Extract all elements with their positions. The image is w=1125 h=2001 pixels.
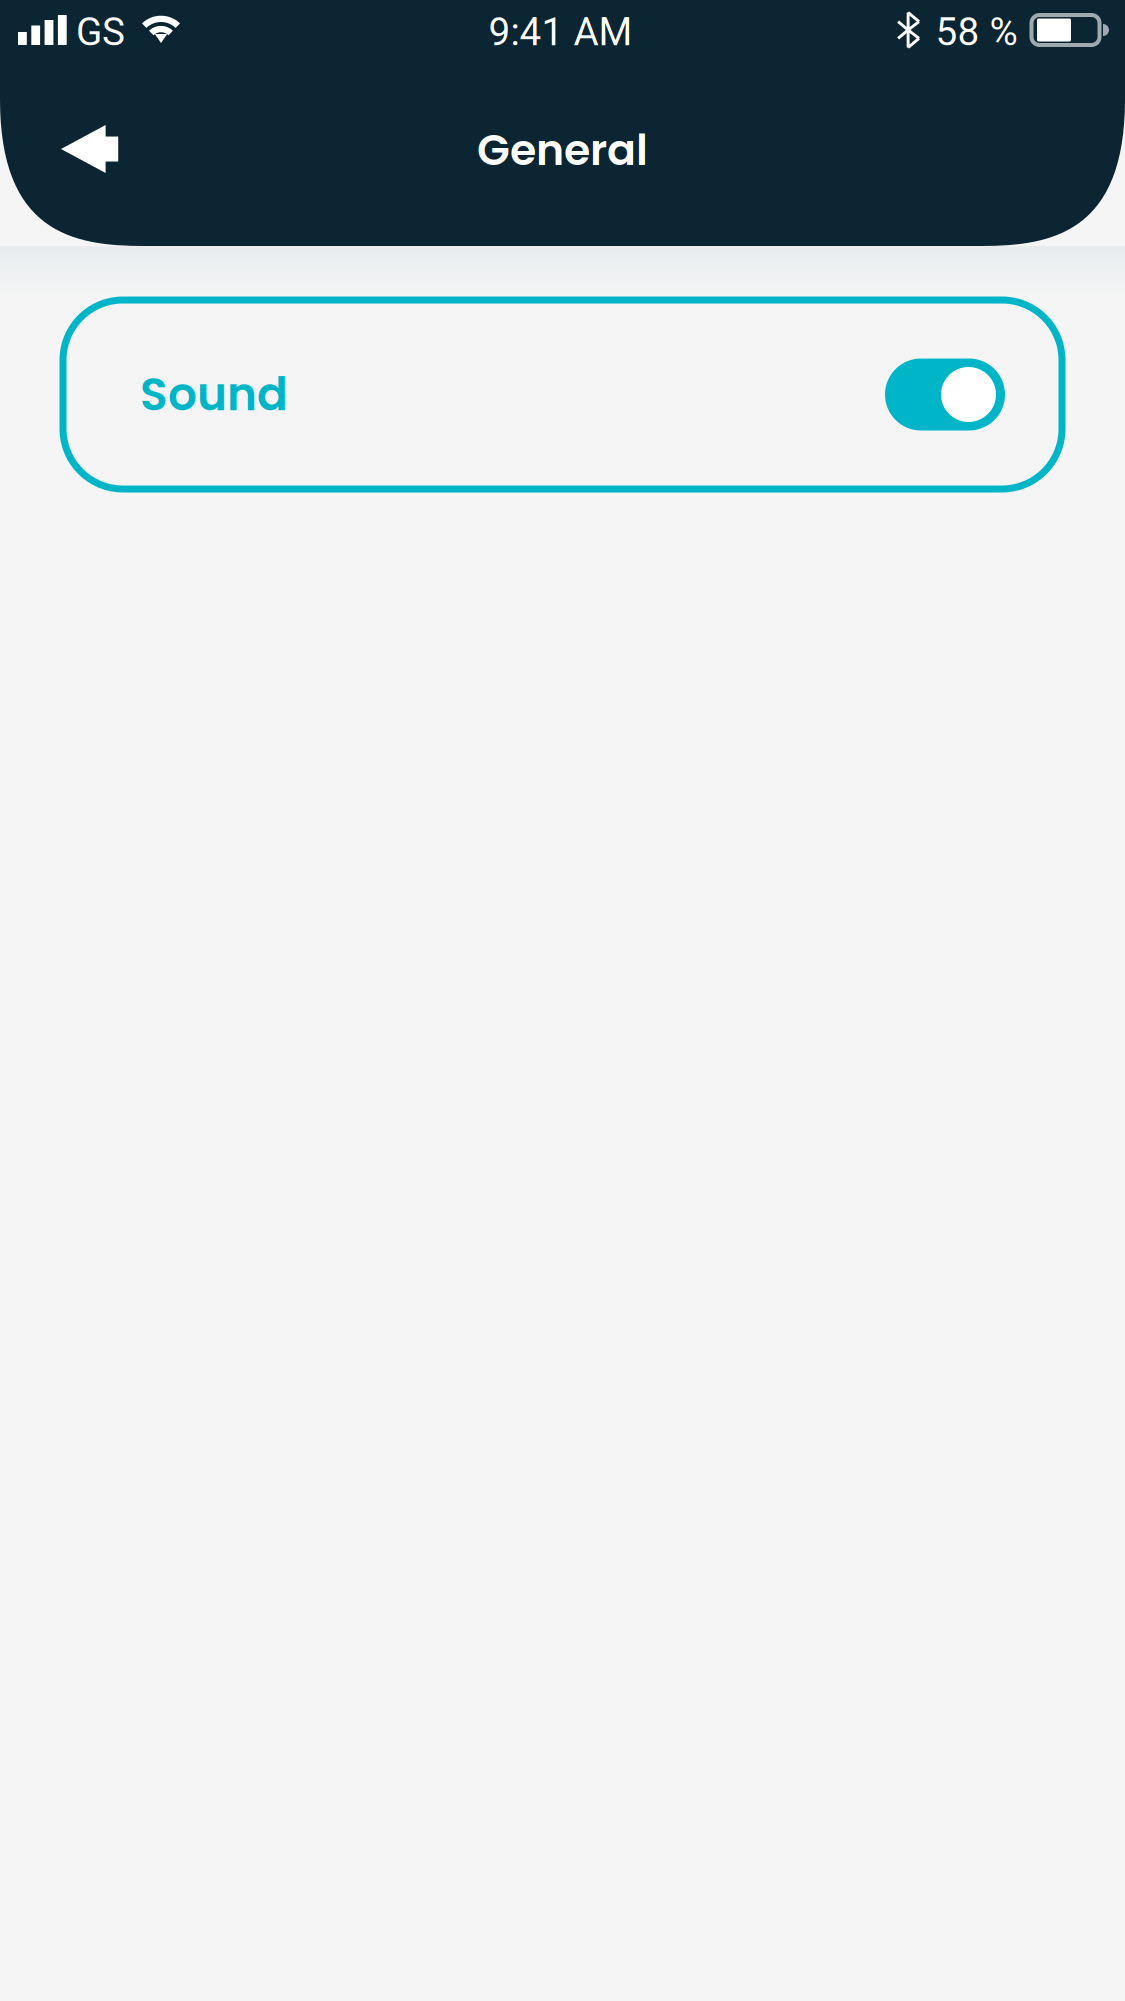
button[interactable]: Back (0, 93, 152, 205)
staticText: GS (76, 9, 125, 55)
staticText: 58 % (935, 9, 1017, 55)
staticText: General (477, 120, 648, 180)
staticText: 9:41 AM (488, 9, 632, 55)
button[interactable]: Sound (63, 300, 1062, 489)
staticText: Sound (140, 363, 288, 426)
